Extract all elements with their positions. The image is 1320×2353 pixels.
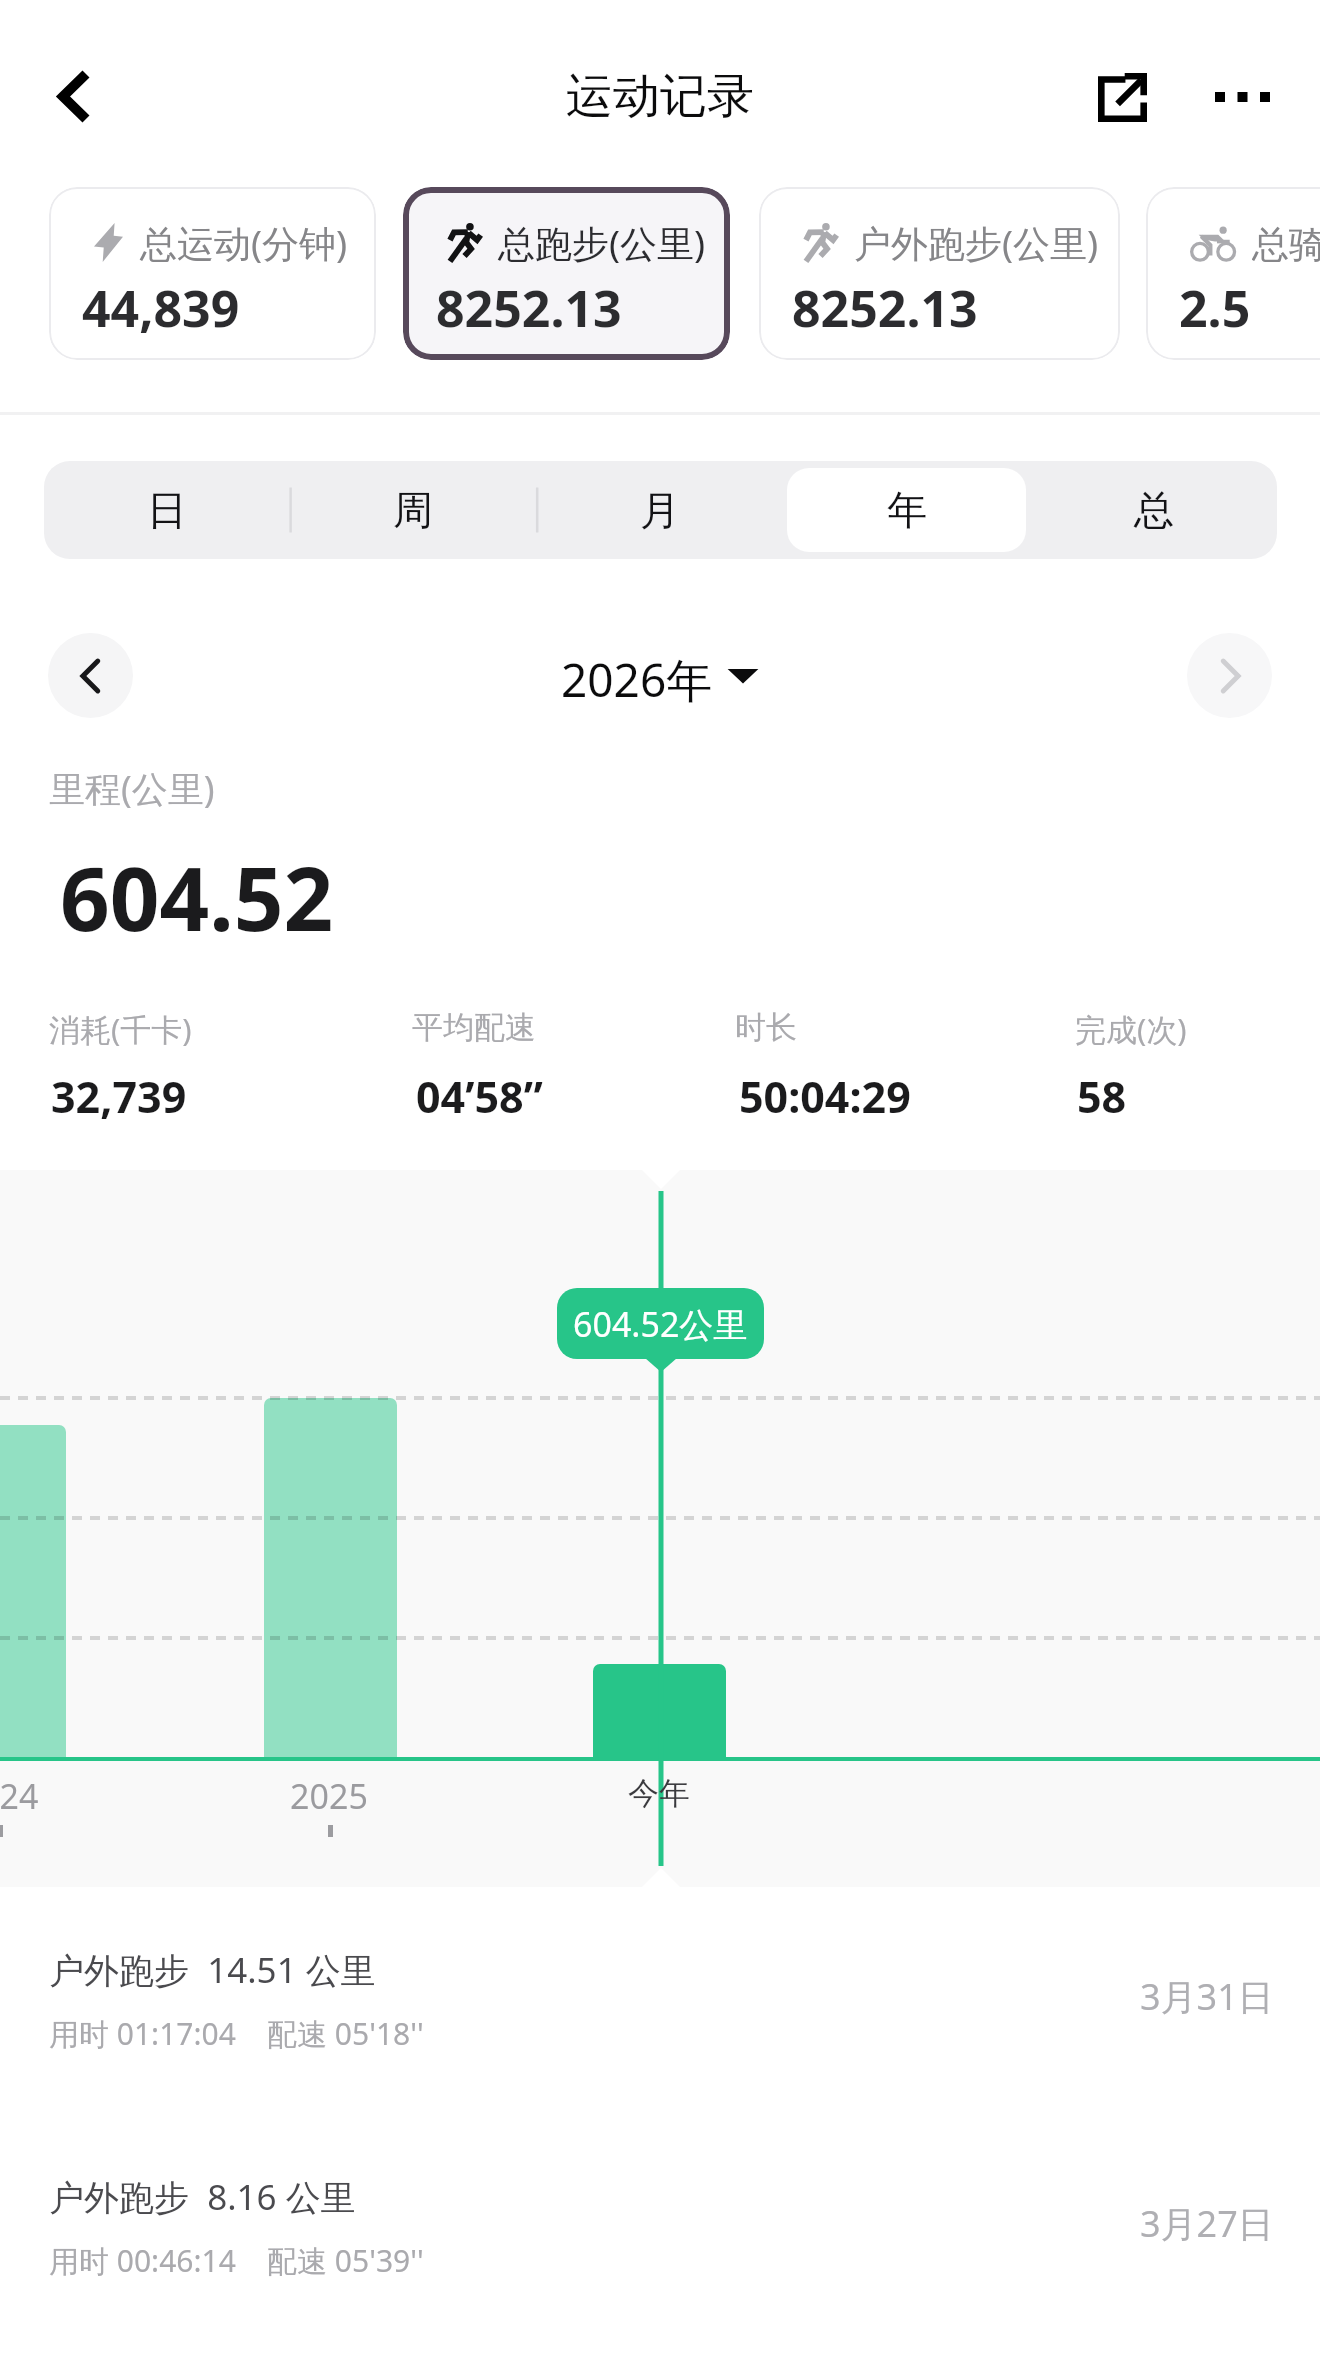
staticText: 2024	[0, 1773, 99, 1819]
staticText: 今年	[559, 1774, 759, 1813]
staticText: 用时 00:46:14 配速 05'39''	[49, 2240, 424, 2281]
staticText: 3月27日	[1140, 2199, 1274, 2248]
staticText: 总骑行(公里)	[1252, 217, 1320, 268]
button[interactable]: 年	[787, 468, 1026, 552]
staticText: 04’58”	[416, 1067, 543, 1126]
staticText: 完成(次)	[1075, 1008, 1187, 1050]
button[interactable]: 总运动(分钟)	[49, 187, 376, 360]
button[interactable]: 户外跑步 14.51 公里	[0, 1900, 1320, 2100]
staticText: 里程(公里)	[49, 764, 215, 813]
button[interactable]: Next year	[1187, 633, 1272, 718]
staticText: 2.5	[1179, 274, 1251, 342]
staticText: 604.52	[60, 838, 334, 956]
button[interactable]: 月	[540, 468, 779, 552]
staticText: 户外跑步 8.16 公里	[49, 2173, 356, 2221]
button[interactable]: 户外跑步(公里)	[759, 187, 1120, 360]
staticText: 2025	[229, 1773, 429, 1819]
staticText: 总	[1134, 485, 1174, 535]
staticText: 总跑步(公里)	[498, 217, 706, 268]
staticText: 32,739	[51, 1067, 187, 1126]
staticText: 时长	[735, 1008, 797, 1047]
staticText: 用时 01:17:04 配速 05'18''	[49, 2013, 424, 2054]
staticText: 月	[640, 485, 680, 535]
staticText: 58	[1077, 1067, 1127, 1126]
staticText: 周	[393, 485, 433, 535]
button[interactable]: Previous year	[48, 633, 133, 718]
staticText: 运动记录	[566, 67, 754, 126]
staticText: 8252.13	[436, 274, 622, 342]
button[interactable]: 总骑行(公里)	[1146, 187, 1320, 360]
button[interactable]: 户外跑步 8.16 公里	[0, 2127, 1320, 2327]
staticText: 户外跑步 14.51 公里	[49, 1946, 376, 1994]
staticText: 44,839	[82, 274, 240, 342]
staticText: 50:04:29	[739, 1067, 911, 1126]
staticText: 日	[147, 485, 187, 535]
button[interactable]: Share	[1072, 47, 1172, 147]
staticText: 3月31日	[1140, 1972, 1274, 2021]
button[interactable]: 日	[48, 468, 286, 552]
staticText: 消耗(千卡)	[49, 1008, 192, 1050]
button[interactable]: 周	[294, 468, 532, 552]
staticText: 年	[887, 485, 927, 535]
staticText: 户外跑步(公里)	[854, 217, 1099, 268]
button[interactable]: 总跑步(公里)	[403, 187, 730, 360]
staticText: 总运动(分钟)	[140, 217, 348, 268]
button[interactable]: Back	[24, 46, 124, 146]
staticText: 平均配速	[412, 1008, 536, 1047]
staticText: 604.52公里	[573, 1301, 748, 1347]
staticText: 2026年	[561, 648, 713, 711]
button[interactable]: More options	[1192, 47, 1292, 147]
staticText: 8252.13	[792, 274, 978, 342]
button[interactable]: 总	[1034, 468, 1273, 552]
